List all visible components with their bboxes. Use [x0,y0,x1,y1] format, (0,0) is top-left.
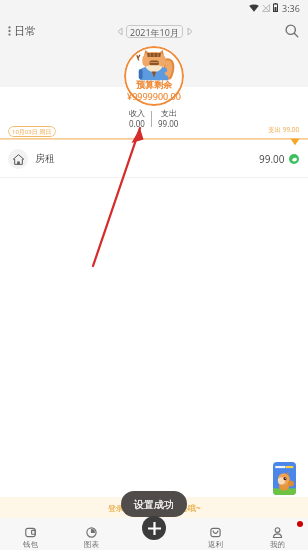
staticText: 10月03日 周日 [12,128,52,136]
button[interactable]: 房租 [0,140,308,177]
button[interactable]: 返利 [184,518,246,550]
staticText: 预算剩余 [136,79,172,90]
staticText: 房租 [35,152,55,165]
button[interactable]: 2021年10月 [126,25,183,38]
staticText: 支出 99.00 [268,125,300,134]
button[interactable]: Add record [142,516,166,540]
staticText: 图表 [84,540,99,549]
button[interactable]: 日常 [0,20,44,42]
staticText: 0.00 [129,118,145,129]
button[interactable]: Search [280,19,304,43]
button[interactable]: 钱包 [0,518,61,550]
staticText: 我的 [270,540,285,549]
staticText: ¥9999900.00 [127,90,181,102]
button[interactable]: 图表 [61,518,122,550]
staticText: 返利 [208,540,223,549]
button[interactable]: Next month [184,26,195,37]
staticText: 登录一下，记账更放心哦~ [108,502,201,513]
staticText: 99.00 [259,152,285,166]
staticText: 2021年10月 [130,26,179,38]
button[interactable]: 我的 [246,518,308,550]
button[interactable] [124,46,184,106]
staticText: 收入 [129,108,145,118]
button[interactable]: Previous month [114,26,125,37]
staticText: 99.00 [158,118,179,129]
staticText: 设置成功 [134,498,174,511]
staticText: 3:36 [282,2,300,14]
button[interactable]: Promotion [271,460,298,497]
staticText: 支出 [161,108,177,118]
staticText: 日常 [14,24,36,38]
staticText: 钱包 [23,540,38,549]
